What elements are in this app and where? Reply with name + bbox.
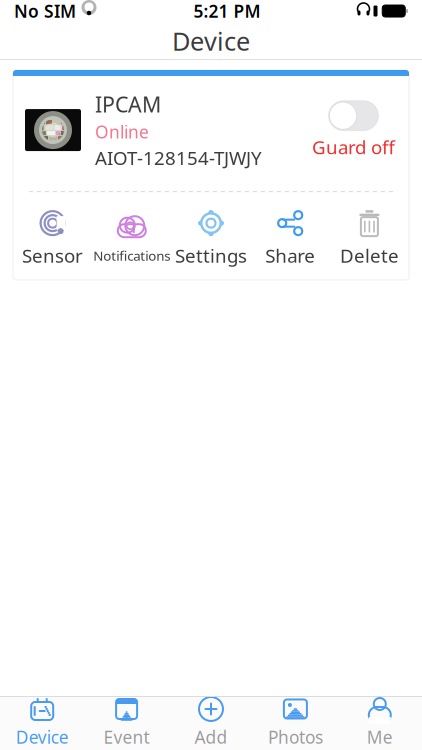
button[interactable]: Notifications	[92, 203, 171, 274]
button[interactable]: Share	[251, 199, 330, 278]
button[interactable]: Settings	[171, 199, 251, 278]
staticText: Device	[16, 725, 69, 748]
staticText: Event	[104, 725, 150, 748]
staticText: Photos	[268, 725, 323, 748]
button[interactable]: IPCAM	[13, 76, 409, 184]
button[interactable]: Sensor	[13, 199, 92, 278]
staticText: Guard off	[312, 135, 395, 159]
staticText: Sensor	[22, 243, 83, 268]
staticText: Delete	[340, 243, 399, 268]
staticText: Add	[194, 725, 227, 748]
staticText: Online	[95, 120, 149, 143]
button[interactable]: Event	[84, 691, 169, 750]
staticText: Device	[172, 24, 250, 58]
staticText: AIOT-128154-TJWJY	[95, 145, 262, 170]
staticText: 5:21 PM	[193, 0, 260, 22]
staticText: No SIM	[14, 0, 76, 22]
staticText: IPCAM	[95, 90, 161, 118]
staticText: Me	[367, 725, 393, 748]
staticText: Notifications	[93, 247, 170, 264]
button[interactable]: Device	[0, 691, 84, 750]
button[interactable]: Photos	[253, 691, 338, 750]
button[interactable]: Me	[338, 691, 422, 750]
staticText: Share	[265, 243, 315, 268]
button[interactable]: Add	[169, 691, 253, 750]
button[interactable]: Delete	[330, 199, 409, 278]
staticText: Settings	[175, 243, 247, 268]
